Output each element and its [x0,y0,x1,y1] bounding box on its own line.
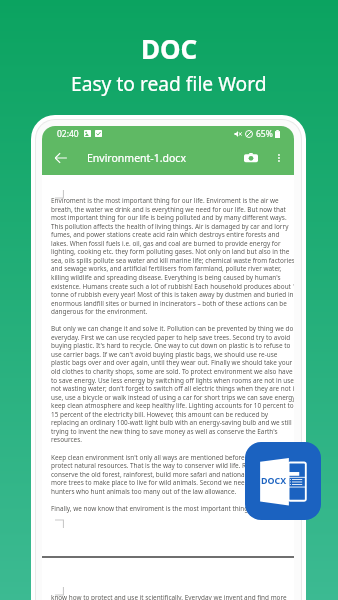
staticText: Finally, we now know that enviroment is … [51,504,269,513]
staticText: existence. Humans create such a lot of r… [51,282,294,291]
staticText: But only we can change it and solve it. … [51,324,294,333]
staticText: breath, the water we drink and is everyt… [51,205,286,214]
staticText: use, use a bicycle or walk instead of us… [51,393,294,402]
staticText: hunters who hunt animals too many out of… [51,487,237,496]
staticText: use carrier bags. If we can't avoid buyi… [51,350,278,359]
staticText: 15 percent of the electricity bill. Howe… [51,410,269,419]
staticText: lakes. When fossil fuels i.e. oil, gas a… [51,239,281,248]
staticText: everyday. First we can use recycled pape… [51,333,291,342]
staticText: fumes, and power stations create acid ra… [51,230,280,239]
staticText: killing wildlife and spreading disease. … [51,273,281,282]
staticText: conserve the old forest, rainforest, bui… [51,470,284,479]
staticText: more trees to make place to live for wil… [51,478,279,487]
button[interactable]: Camera [241,148,261,168]
staticText: trying to invent the new thing to save m… [51,427,278,436]
staticText: enormous landfill sites or burned in inc… [51,299,287,308]
staticText: plastic bags over and over again, until … [51,358,293,367]
staticText: Easy to read file Word [71,70,267,96]
staticText: This pollution affects the health of liv… [51,222,289,231]
staticText: sea, oils spills pollute sea water and k… [51,256,294,265]
staticText: tonne of rubbish every year! Most of thi… [51,290,294,299]
staticText: most important thing for our life is bei… [51,213,287,222]
staticText: keep clean atmosphere and keep healthy l… [51,401,294,410]
staticText: protect natural resources. That is the w… [51,461,279,470]
staticText: to save energy. Use less energy by switc… [51,376,294,385]
button[interactable]: More options [271,150,287,166]
staticText: dangerous for the environment. [51,307,148,316]
staticText: 65% [256,128,273,140]
button[interactable]: Back [51,148,71,168]
button[interactable]: DOCX file [245,442,321,520]
staticText: Environment-1.docx [87,151,186,165]
staticText: buying plastic. It's hard to recycle. On… [51,341,291,350]
staticText: lighting, cooking etc. they form polluti… [51,247,290,256]
staticText: replacing an ordinary 100-watt light bul… [51,418,292,427]
staticText: not wasting water; don't forget to switc… [51,384,294,393]
staticText: old clothes to charity shops, some are s… [51,367,293,376]
staticText: DOC [141,31,198,66]
staticText: Keep clean environment isn't only all wa… [51,453,281,462]
staticText: and sewage works, and artificial fertili… [51,264,282,273]
staticText: DOCX [261,474,287,486]
staticText: 02:40 [57,128,79,140]
staticText: Enviroment is the most important thing f… [51,196,279,205]
staticText: know how to protect and use it scientifi… [51,593,287,600]
staticText: resources. [51,435,82,444]
